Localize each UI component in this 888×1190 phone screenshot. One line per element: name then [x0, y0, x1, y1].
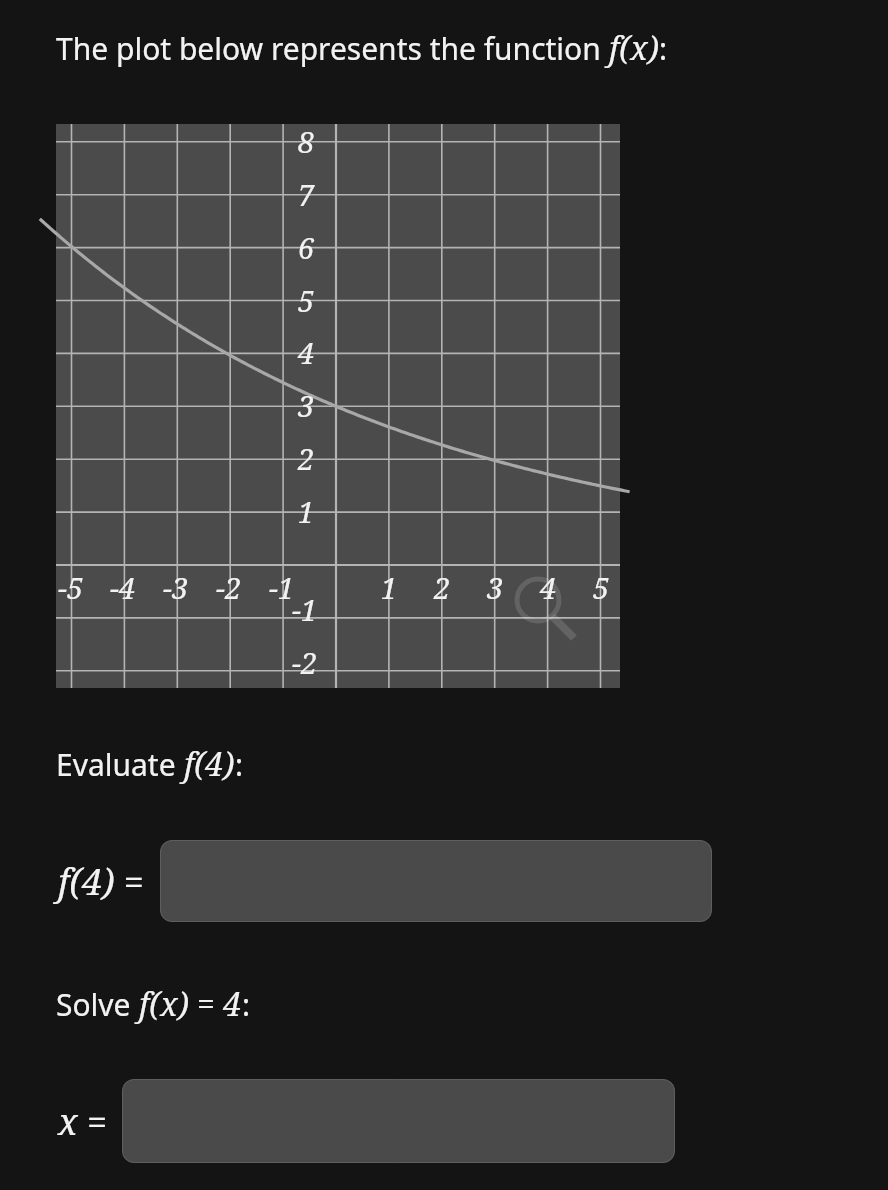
staticText: -4: [110, 568, 136, 607]
staticText: 1: [298, 492, 332, 531]
staticText: The plot below represents the function: [56, 28, 609, 69]
staticText: f(4): [184, 742, 235, 786]
staticText: 3: [298, 386, 332, 425]
button[interactable]: Answer for f of 4: [160, 840, 712, 922]
staticText: 4: [540, 568, 557, 607]
staticText: 5: [298, 281, 332, 320]
staticText: -5: [58, 568, 84, 607]
staticText: -3: [163, 568, 189, 607]
staticText: 7: [298, 175, 332, 214]
staticText: Solve: [56, 984, 139, 1025]
staticText: -2: [292, 643, 318, 682]
staticText: f(4) =: [58, 857, 144, 906]
staticText: :: [659, 28, 668, 69]
staticText: 6: [298, 228, 332, 267]
staticText: 2: [298, 439, 332, 478]
staticText: f(x) = 4: [139, 982, 242, 1026]
button[interactable]: Answer for x: [122, 1079, 675, 1163]
staticText: 8: [298, 122, 332, 161]
staticText: 4: [298, 333, 332, 372]
staticText: 1: [381, 568, 398, 607]
staticText: 5: [593, 568, 610, 607]
staticText: f(x): [609, 26, 659, 70]
staticText: :: [235, 744, 244, 785]
staticText: 2: [434, 568, 451, 607]
staticText: 3: [487, 568, 504, 607]
staticText: -1: [292, 590, 318, 629]
staticText: -1: [269, 568, 295, 607]
staticText: :: [242, 984, 251, 1025]
staticText: -2: [216, 568, 242, 607]
staticText: x =: [58, 1097, 108, 1146]
staticText: Evaluate: [56, 744, 184, 785]
